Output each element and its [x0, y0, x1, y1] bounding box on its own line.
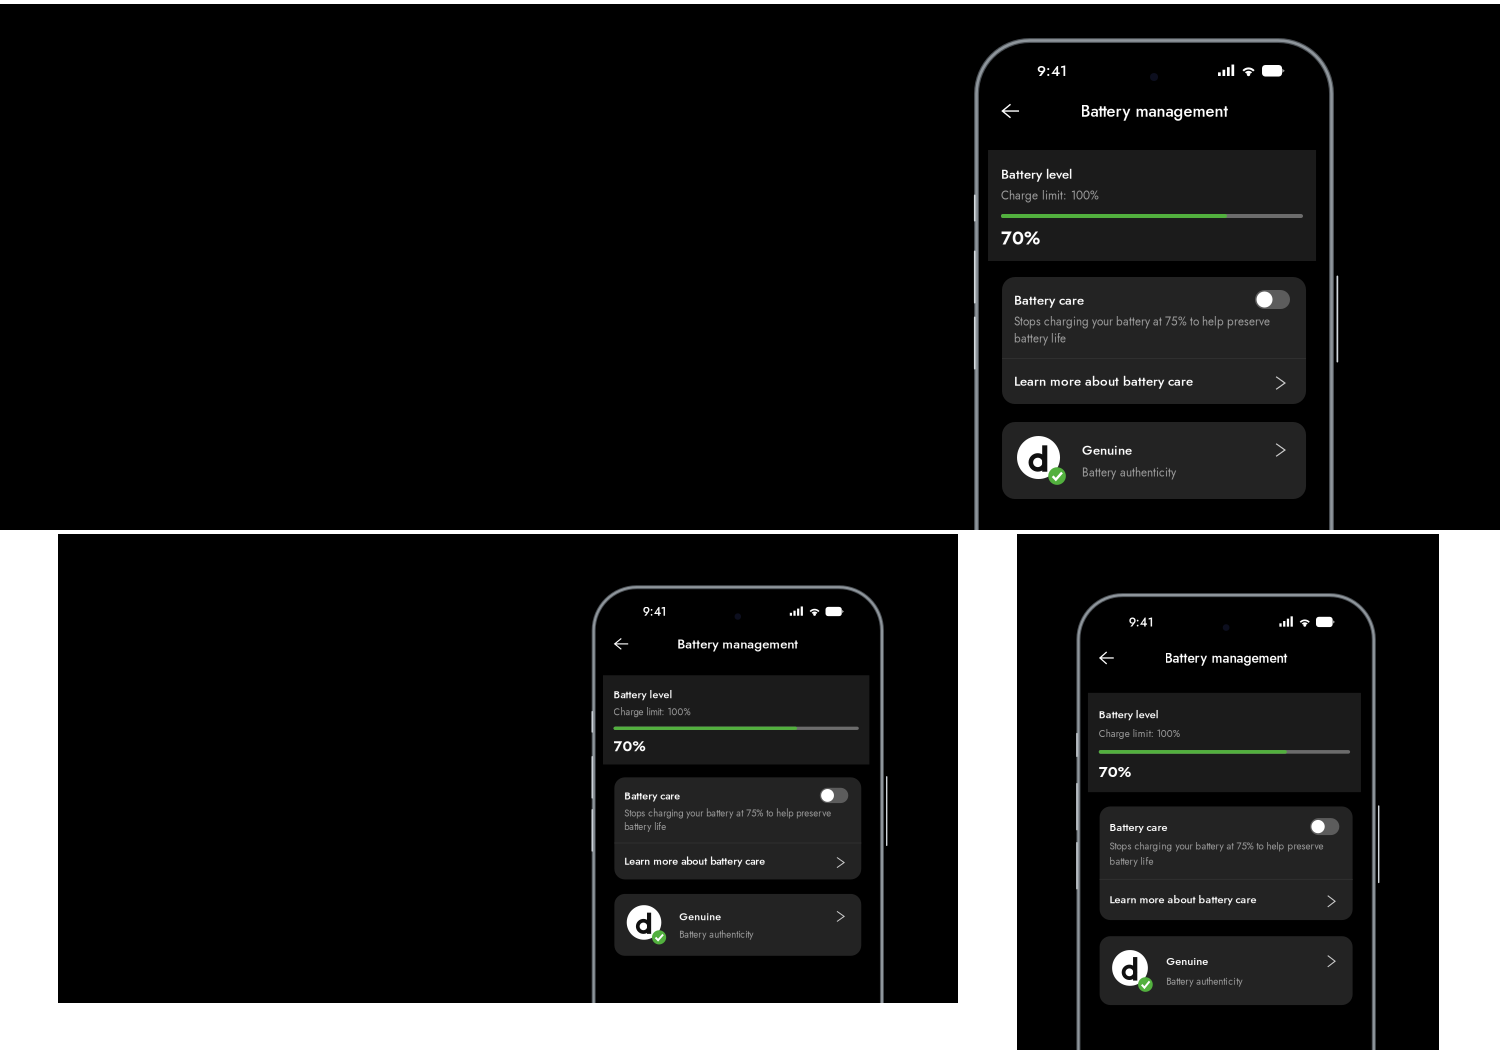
- staticText: Stops charging your battery at 75% to he…: [1110, 839, 1324, 853]
- button[interactable]: Battery care: [1310, 818, 1339, 835]
- staticText: 70%: [1001, 224, 1040, 251]
- staticText: Genuine: [679, 909, 721, 924]
- staticText: battery life: [624, 820, 666, 834]
- staticText: Battery level: [614, 687, 673, 702]
- staticText: Battery care: [624, 788, 680, 804]
- staticText: Genuine: [1166, 953, 1208, 969]
- button[interactable]: Back: [1092, 641, 1129, 675]
- staticText: Battery authenticity: [1166, 974, 1242, 988]
- staticText: Battery level: [1099, 706, 1159, 722]
- staticText: Battery authenticity: [679, 928, 753, 941]
- staticText: Battery care: [1110, 819, 1168, 835]
- staticText: Stops charging your battery at 75% to he…: [1014, 313, 1270, 330]
- staticText: Battery management: [1080, 99, 1227, 123]
- button[interactable]: Genuine: [614, 894, 861, 956]
- button[interactable]: Battery care: [1255, 290, 1290, 309]
- button[interactable]: Genuine: [1100, 936, 1353, 1005]
- staticText: Learn more about battery care: [624, 853, 765, 869]
- staticText: 70%: [614, 735, 646, 757]
- button[interactable]: Battery care: [820, 788, 848, 803]
- staticText: 70%: [1099, 760, 1131, 783]
- staticText: Genuine: [1082, 440, 1132, 460]
- button[interactable]: Learn more about battery care: [614, 842, 861, 879]
- button[interactable]: Genuine: [1002, 422, 1306, 499]
- staticText: 9:41: [643, 603, 667, 620]
- staticText: Learn more about battery care: [1110, 891, 1257, 907]
- staticText: Charge limit: 100%: [1099, 726, 1180, 741]
- staticText: Battery management: [1165, 648, 1288, 668]
- button[interactable]: Learn more about battery care: [1002, 358, 1306, 404]
- staticText: Battery authenticity: [1082, 464, 1176, 481]
- button[interactable]: Learn more about battery care: [1100, 879, 1353, 920]
- staticText: 9:41: [1037, 60, 1067, 82]
- staticText: Stops charging your battery at 75% to he…: [624, 806, 831, 820]
- staticText: Learn more about battery care: [1014, 371, 1193, 391]
- staticText: battery life: [1110, 854, 1154, 868]
- staticText: battery life: [1014, 330, 1066, 347]
- staticText: Battery level: [1001, 164, 1072, 184]
- button[interactable]: Back: [993, 92, 1037, 130]
- staticText: Charge limit: 100%: [1001, 187, 1099, 204]
- staticText: 9:41: [1129, 613, 1154, 631]
- staticText: Battery care: [1014, 290, 1084, 310]
- button[interactable]: Back: [607, 629, 643, 659]
- staticText: Charge limit: 100%: [614, 705, 691, 719]
- staticText: Battery management: [677, 634, 798, 654]
